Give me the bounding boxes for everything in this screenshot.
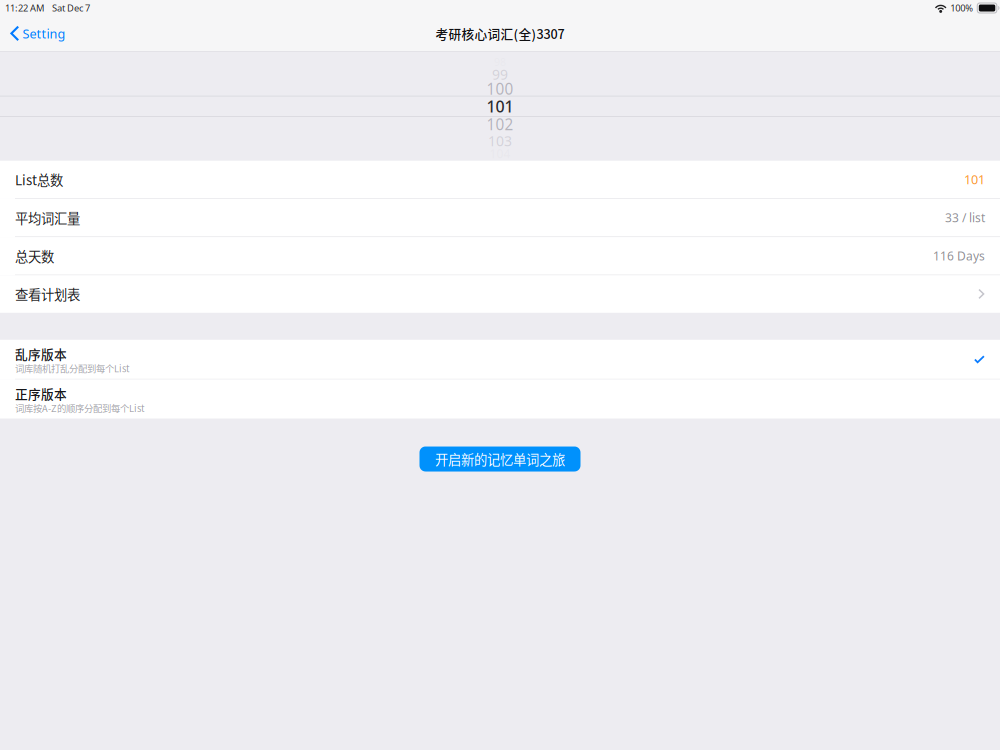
staticText: List总数	[15, 170, 63, 189]
staticText: 99	[492, 65, 508, 84]
button[interactable]: 平均词汇量	[0, 199, 1000, 237]
staticText: 乱序版本	[15, 345, 67, 363]
staticText: 100%	[950, 2, 973, 14]
button[interactable]: List总数	[0, 161, 1000, 199]
button[interactable]: 总天数	[0, 237, 1000, 275]
staticText: 33 / list	[945, 209, 985, 226]
button[interactable]: 正序版本	[0, 379, 1000, 418]
staticText: Setting	[23, 25, 66, 42]
staticText: 平均词汇量	[15, 208, 80, 227]
button[interactable]: 查看计划表	[0, 275, 1000, 313]
button[interactable]: 开启新的记忆单词之旅	[419, 446, 580, 471]
staticText: Sat Dec 7	[52, 2, 90, 14]
button[interactable]: Setting	[0, 16, 76, 51]
staticText: 词库随机打乱分配到每个List	[15, 361, 130, 375]
staticText: 11:22 AM	[5, 2, 44, 14]
staticText: 词库按A-Z的顺序分配到每个List	[15, 401, 145, 415]
staticText: 116 Days	[933, 248, 985, 264]
staticText: 101	[486, 95, 513, 117]
staticText: 100	[486, 78, 513, 99]
staticText: 开启新的记忆单词之旅	[435, 449, 565, 469]
staticText: 正序版本	[15, 384, 67, 403]
staticText: 102	[486, 114, 513, 135]
button[interactable]: 乱序版本	[0, 340, 1000, 379]
staticText: 103	[488, 131, 512, 150]
staticText: 101	[964, 171, 985, 188]
staticText: 104	[489, 145, 510, 162]
staticText: 总天数	[15, 246, 54, 265]
staticText: 查看计划表	[15, 284, 80, 304]
staticText: 考研核心词汇(全)3307	[435, 24, 564, 43]
